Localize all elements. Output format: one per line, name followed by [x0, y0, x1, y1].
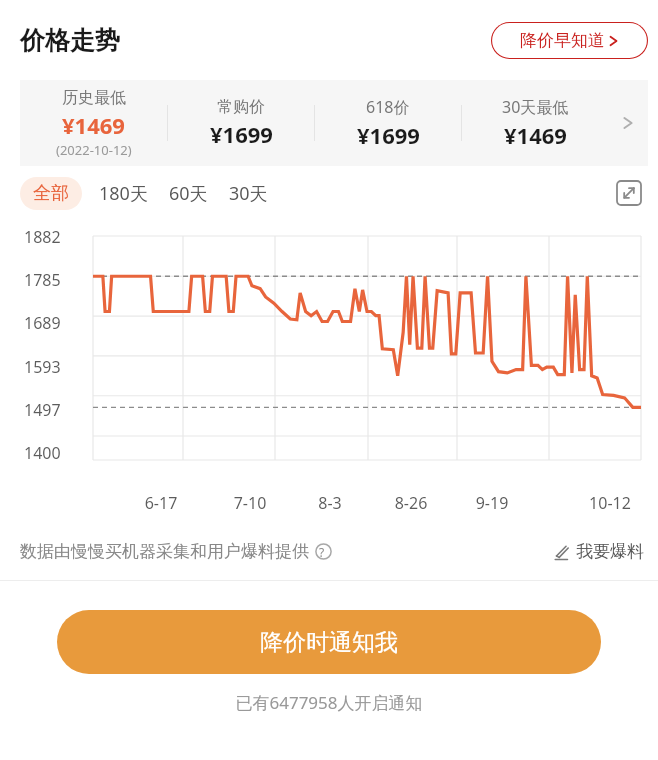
staticText: 我要爆料: [576, 541, 644, 562]
button[interactable]: 常购价: [168, 97, 314, 149]
button[interactable]: 30天: [220, 176, 277, 211]
staticText: 历史最低: [62, 88, 126, 108]
staticText: 30天最低: [502, 96, 569, 118]
staticText: 数据由慢慢买机器采集和用户爆料提供: [20, 541, 309, 562]
staticText: 30天: [229, 181, 268, 206]
staticText: 1400: [24, 442, 61, 460]
staticText: 9-19: [462, 492, 522, 514]
staticText: 价格走势: [20, 25, 120, 56]
staticText: ¥1469: [504, 120, 567, 150]
staticText: (2022-10-12): [56, 141, 132, 159]
staticText: 降价时通知我: [260, 628, 398, 657]
staticText: 1689: [24, 312, 61, 330]
staticText: 已有6477958人开启通知: [0, 691, 658, 714]
button[interactable]: Expand chart: [612, 176, 646, 210]
button[interactable]: 历史最低: [20, 88, 167, 159]
staticText: 60天: [169, 181, 208, 206]
button[interactable]: 历史最低: [20, 80, 648, 166]
staticText: 全部: [33, 182, 69, 205]
button[interactable]: 618价: [315, 96, 461, 150]
button[interactable]: 我要爆料: [552, 541, 644, 562]
staticText: 7-10: [220, 492, 280, 514]
staticText: ¥1699: [357, 120, 420, 150]
staticText: 180天: [99, 181, 148, 206]
staticText: 1497: [24, 399, 61, 417]
button[interactable]: 180天: [90, 176, 157, 211]
staticText: 常购价: [217, 97, 265, 117]
staticText: ¥1469: [62, 110, 125, 140]
staticText: 618价: [366, 96, 410, 118]
staticText: 10-12: [580, 492, 640, 514]
staticText: 降价早知道: [520, 30, 605, 51]
staticText: 1593: [24, 356, 61, 374]
staticText: 6-17: [131, 492, 191, 514]
staticText: 1882: [24, 226, 61, 244]
staticText: ?: [319, 544, 325, 560]
button[interactable]: 降价时通知我: [57, 610, 601, 674]
button[interactable]: 降价早知道: [491, 22, 648, 59]
button[interactable]: 30天最低: [462, 96, 608, 150]
button[interactable]: 全部: [20, 177, 82, 210]
staticText: 8-26: [381, 492, 441, 514]
staticText: 1785: [24, 269, 61, 287]
button[interactable]: 数据由慢慢买机器采集和用户爆料提供: [20, 541, 338, 562]
button[interactable]: 60天: [160, 176, 217, 211]
staticText: 8-3: [300, 492, 360, 514]
staticText: ¥1699: [210, 119, 273, 149]
